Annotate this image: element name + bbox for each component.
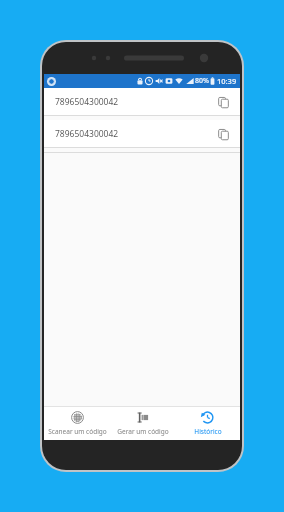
staticText: Histórico [194,427,222,436]
staticText: 80% [195,76,209,86]
staticText: 7896504300042 [55,128,119,140]
staticText: 10:39 [217,76,237,86]
staticText: Gerar um código [117,427,169,436]
button[interactable]: Copiar código [214,93,232,111]
button[interactable]: Scanear um código [44,407,110,440]
button[interactable]: 7896504300042 [44,120,240,148]
button[interactable]: 7896504300042 [44,88,240,116]
staticText: Scanear um código [48,427,107,436]
button[interactable]: Histórico [175,407,240,440]
button[interactable]: Copiar código [214,125,232,143]
staticText: 7896504300042 [55,96,119,108]
button[interactable]: Gerar um código [110,407,175,440]
